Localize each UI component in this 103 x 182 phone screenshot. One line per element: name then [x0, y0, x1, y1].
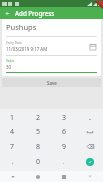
button[interactable]: 6 [51, 125, 77, 139]
staticText: 8 [36, 142, 41, 152]
button[interactable]: 9 [51, 139, 77, 154]
staticText: Value [6, 59, 15, 63]
staticText: 5 [36, 127, 41, 137]
button[interactable]: 0 [25, 154, 51, 169]
button[interactable]: back [77, 139, 103, 154]
staticText: , [12, 158, 14, 166]
staticText: Entry Date [6, 41, 22, 45]
button[interactable]: Keyboard switcher [77, 171, 103, 182]
staticText: 11/03/2019 9:17 AM [6, 46, 48, 52]
button[interactable]: 4 [0, 125, 25, 139]
button[interactable]: 7 [0, 139, 25, 154]
staticText: 9 [62, 142, 67, 152]
button[interactable]: Value [6, 59, 97, 72]
staticText: 1 [10, 113, 15, 123]
button[interactable]: Entry Date [6, 41, 97, 52]
button[interactable]: Back [3, 9, 12, 18]
button[interactable]: Back [0, 171, 25, 182]
button[interactable]: Recents [51, 171, 77, 182]
button[interactable]: Pick date [89, 43, 97, 51]
button[interactable]: ok [77, 154, 103, 169]
button[interactable]: dash [77, 111, 103, 125]
button[interactable]: 2 [25, 111, 51, 125]
staticText: 0 [36, 157, 41, 167]
staticText: 6 [62, 127, 67, 137]
staticText: - [89, 114, 92, 123]
staticText: 3 [62, 113, 67, 123]
staticText: Add Progress [15, 9, 55, 17]
staticText: 30 [6, 64, 12, 70]
staticText: 2 [36, 113, 41, 123]
staticText: . [63, 158, 65, 166]
button[interactable]: space [77, 125, 103, 139]
staticText: 4 [10, 127, 15, 137]
staticText: Pushups [6, 22, 37, 32]
button[interactable]: Home [25, 171, 51, 182]
staticText: Save [47, 80, 57, 86]
button[interactable]: , [0, 154, 25, 169]
button[interactable]: 1 [0, 111, 25, 125]
button[interactable]: Save [2, 78, 101, 87]
button[interactable]: 5 [25, 125, 51, 139]
button[interactable]: 8 [25, 139, 51, 154]
button[interactable]: 3 [51, 111, 77, 125]
staticText: 7 [10, 142, 15, 152]
